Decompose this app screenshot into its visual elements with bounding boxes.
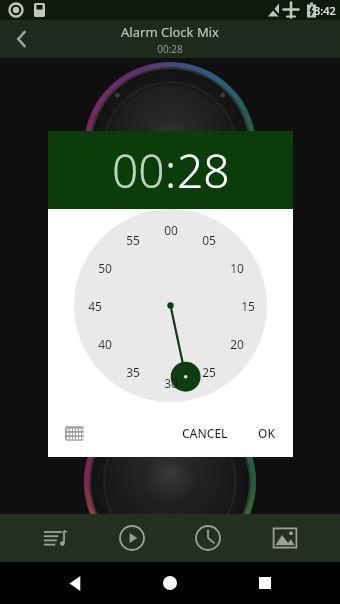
- staticText: 00: [164, 222, 178, 238]
- button[interactable]: 00: [74, 209, 267, 402]
- staticText: Alarm Clock Mix: [121, 23, 219, 41]
- button[interactable]: Recents: [245, 563, 285, 603]
- staticText: 45: [88, 298, 102, 314]
- button[interactable]: 28: [177, 139, 230, 202]
- button[interactable]: Timer: [186, 516, 230, 560]
- staticText: 25: [202, 364, 216, 380]
- staticText: 35: [126, 364, 140, 380]
- staticText: 50: [98, 260, 112, 276]
- staticText: 15: [241, 298, 255, 314]
- staticText: :: [165, 139, 177, 202]
- staticText: CANCEL: [182, 425, 228, 441]
- button[interactable]: Playlist: [33, 516, 77, 560]
- button[interactable]: Back: [55, 563, 95, 603]
- button[interactable]: CANCEL: [172, 417, 238, 449]
- staticText: 20: [230, 336, 244, 352]
- button[interactable]: OK: [248, 417, 285, 449]
- button[interactable]: Keyboard input: [56, 415, 92, 451]
- staticText: 05: [202, 232, 216, 248]
- staticText: 00:28: [157, 42, 183, 56]
- staticText: 28: [177, 139, 230, 202]
- staticText: 3:42: [314, 3, 336, 18]
- button[interactable]: Play: [110, 516, 154, 560]
- staticText: 40: [98, 336, 112, 352]
- staticText: 30: [164, 375, 178, 391]
- button[interactable]: Home: [150, 563, 190, 603]
- staticText: 00: [112, 139, 165, 202]
- staticText: 10: [230, 260, 244, 276]
- staticText: 55: [126, 232, 140, 248]
- button[interactable]: 00: [112, 139, 165, 202]
- button[interactable]: Back: [0, 20, 44, 58]
- button[interactable]: Artwork: [263, 516, 307, 560]
- staticText: OK: [258, 425, 275, 441]
